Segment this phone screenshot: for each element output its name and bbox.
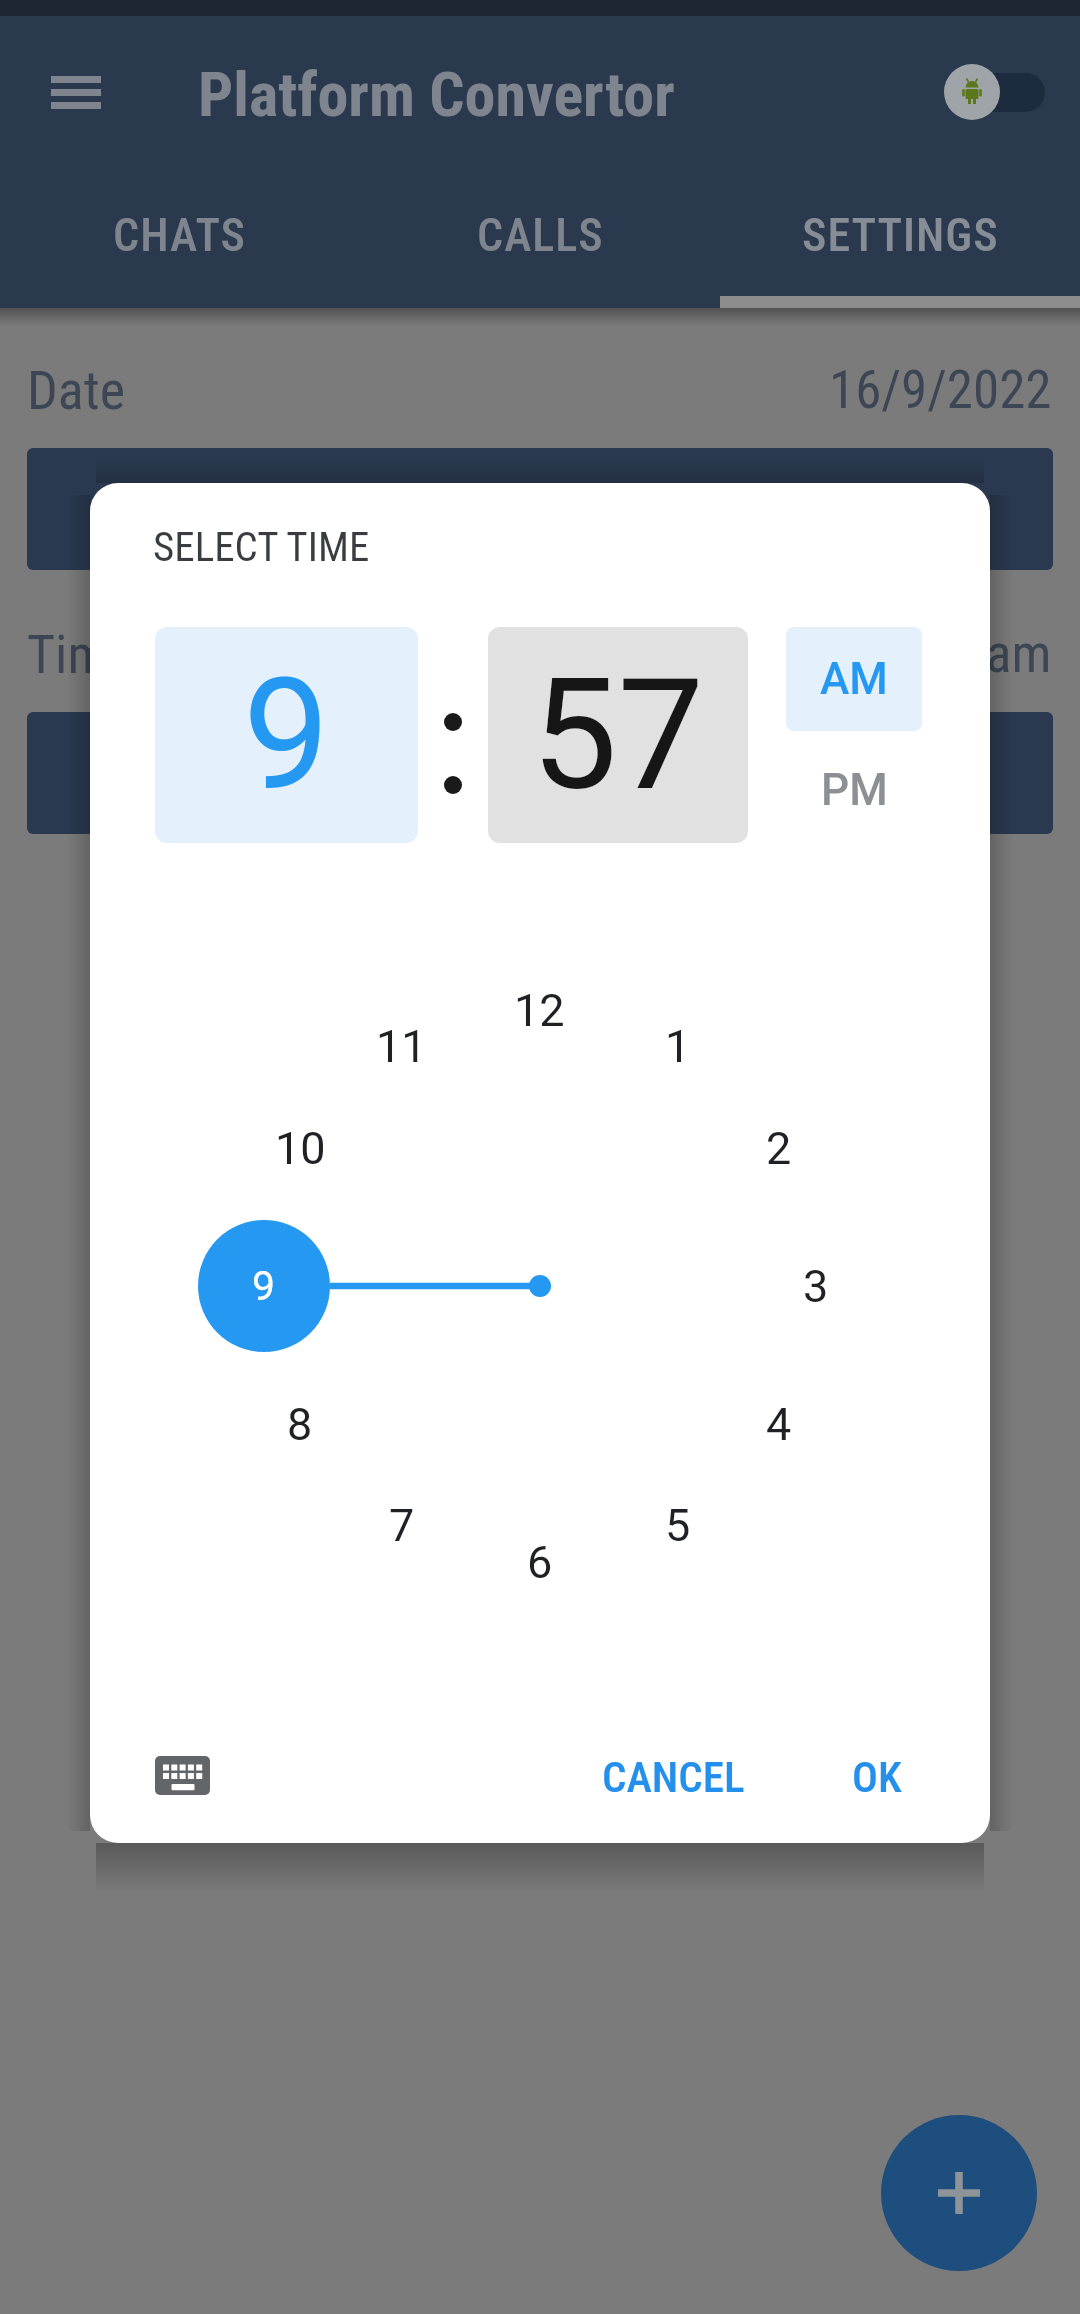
staticText: 16/9/2022 (829, 359, 1052, 421)
staticText: SETTINGS (802, 208, 999, 262)
button[interactable]: 57 (488, 627, 748, 843)
button[interactable]: PM (786, 738, 922, 842)
staticText: Date (27, 359, 125, 422)
staticText: PM (821, 764, 888, 816)
button[interactable]: OK (827, 1747, 927, 1807)
button[interactable] (881, 2115, 1037, 2271)
staticText: 9 (252, 1262, 276, 1310)
button[interactable] (36, 62, 116, 122)
staticText: 9:57 am (883, 623, 1052, 685)
staticText: OK (852, 1752, 902, 1802)
staticText: CANCEL (602, 1752, 745, 1802)
button[interactable] (27, 712, 1053, 834)
button[interactable] (935, 55, 1055, 130)
staticText: 4 (766, 1398, 792, 1451)
staticText: 9 (243, 645, 330, 825)
button[interactable]: AM (786, 627, 922, 731)
button[interactable]: CANCEL (593, 1747, 753, 1807)
staticText: 6 (527, 1536, 553, 1589)
staticText: AM (820, 653, 888, 705)
staticText: SELECT TIME (153, 523, 370, 563)
staticText: 8 (287, 1398, 313, 1451)
staticText: 1 (665, 1020, 691, 1073)
staticText: 10 (275, 1122, 326, 1175)
button[interactable]: CHATS (0, 180, 360, 290)
staticText: 7 (389, 1499, 415, 1552)
button[interactable] (27, 448, 1053, 570)
button[interactable]: SETTINGS (720, 180, 1080, 290)
button[interactable]: CALLS (360, 180, 720, 290)
staticText: 5 (665, 1499, 691, 1552)
button[interactable] (135, 1739, 231, 1819)
staticText: 11 (376, 1020, 427, 1073)
staticText: CALLS (477, 208, 604, 262)
staticText: 57 (531, 645, 705, 825)
staticText: 3 (803, 1260, 829, 1313)
staticText: 2 (766, 1122, 792, 1175)
staticText: 12 (514, 984, 565, 1037)
staticText: Platform Convertor (198, 58, 675, 130)
button[interactable]: 9 (155, 627, 418, 843)
staticText: CHATS (113, 208, 247, 262)
staticText: Time (27, 623, 134, 686)
